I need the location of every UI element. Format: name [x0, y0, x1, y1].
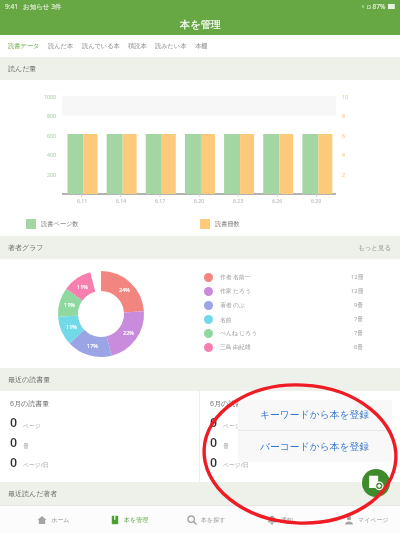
staticText: ページ [223, 422, 241, 429]
staticText: 積読本 [128, 42, 147, 50]
staticText: 本を管理 [180, 18, 221, 31]
staticText: 800 [47, 112, 56, 119]
button[interactable]: 読んでいる本 [78, 35, 124, 57]
staticText: 6月の読書量 [210, 399, 250, 409]
staticText: ページ/日 [223, 461, 249, 469]
button[interactable]: 作者 名前一 [204, 270, 364, 284]
staticText: 6.17 [155, 197, 166, 204]
button[interactable]: 作家 たろう [204, 284, 364, 298]
button[interactable]: 本を探す [183, 506, 230, 533]
staticText: 最近読んだ著者 [8, 489, 58, 498]
staticText: 9:41 [5, 2, 18, 11]
staticText: 17% [87, 342, 98, 349]
staticText: 6.20 [194, 197, 205, 204]
staticText: 0 [10, 454, 18, 471]
button[interactable]: 本を管理 [106, 506, 153, 533]
staticText: 600 [47, 132, 56, 139]
staticText: 6.29 [311, 197, 322, 204]
staticText: 読みたい本 [155, 42, 187, 50]
staticText: 200 [47, 171, 56, 178]
staticText: 読んでいる本 [82, 42, 120, 50]
button[interactable]: キーワードから本を登録 [238, 400, 392, 430]
staticText: 9冊 [354, 301, 364, 309]
staticText: ◦ ▫ 87% [361, 2, 386, 11]
staticText: 0 [10, 414, 18, 431]
staticText: 本を管理 [124, 516, 149, 524]
staticText: 6 [342, 132, 345, 139]
button[interactable]: 読書データ [4, 35, 44, 57]
staticText: 0 [210, 434, 218, 451]
staticText: 読んだ量 [8, 64, 37, 73]
staticText: 12冊 [351, 287, 364, 295]
staticText: もっと見る [358, 244, 392, 252]
button[interactable]: 読んだ本 [44, 35, 78, 57]
staticText: ぺんね じろう [220, 329, 258, 337]
staticText: 著者 のぶ [220, 301, 245, 309]
staticText: 最近の読書量 [8, 375, 51, 384]
button[interactable]: バーコードから本を登録 [238, 431, 392, 462]
staticText: 冊 [223, 442, 229, 449]
staticText: 読書データ [8, 42, 40, 50]
staticText: 通知 [281, 516, 293, 524]
button[interactable]: 通知 [263, 506, 297, 533]
staticText: 読書冊数 [215, 220, 240, 228]
staticText: 22% [123, 329, 134, 336]
staticText: 0 [210, 454, 218, 471]
staticText: マイページ [358, 516, 389, 524]
staticText: 11% [77, 283, 88, 290]
staticText: 7冊 [354, 315, 364, 323]
staticText: お知らせ 3件 [23, 2, 62, 11]
staticText: 11% [66, 323, 77, 330]
staticText: 12冊 [351, 273, 364, 281]
staticText: 6.23 [233, 197, 244, 204]
button[interactable]: ぺんね じろう [204, 326, 364, 340]
button[interactable]: マイページ [340, 506, 393, 533]
button[interactable]: ホーム [33, 506, 74, 533]
button[interactable]: 本棚 [191, 35, 212, 57]
button[interactable]: 三島 由紀雄 [204, 340, 364, 354]
staticText: 2 [342, 171, 345, 178]
staticText: 6冊 [354, 343, 364, 351]
staticText: 400 [47, 151, 56, 158]
staticText: 著者グラフ [8, 243, 44, 252]
staticText: ページ [23, 422, 41, 429]
button[interactable]: もっと見る [350, 236, 400, 259]
staticText: 0 [210, 414, 218, 431]
staticText: ページ/日 [23, 461, 49, 469]
staticText: 7冊 [354, 329, 364, 337]
button[interactable]: 著者 のぶ [204, 298, 364, 312]
staticText: 11% [64, 301, 75, 308]
button[interactable]: 本を登録 [362, 469, 390, 497]
button[interactable]: 名前 [204, 312, 364, 326]
staticText: 読んだ本 [48, 42, 74, 50]
staticText: 名前 [220, 316, 232, 323]
staticText: 8 [342, 112, 345, 119]
staticText: 24% [119, 286, 130, 293]
staticText: 4 [342, 151, 345, 158]
staticText: 6.26 [272, 197, 283, 204]
staticText: 6月の読書量 [10, 399, 50, 409]
staticText: 作家 たろう [220, 287, 251, 295]
button[interactable]: 読みたい本 [151, 35, 191, 57]
staticText: 10 [342, 93, 348, 100]
staticText: 冊 [23, 442, 29, 449]
staticText: 1000 [44, 93, 56, 100]
staticText: 0 [10, 434, 18, 451]
staticText: 6.11 [77, 197, 88, 204]
staticText: 本棚 [195, 42, 208, 50]
staticText: バーコードから本を登録 [260, 441, 370, 453]
staticText: キーワードから本を登録 [260, 409, 370, 421]
staticText: 本を探す [201, 516, 226, 524]
staticText: 読書ページ数 [41, 220, 79, 228]
staticText: 三島 由紀雄 [220, 343, 251, 351]
staticText: 6.14 [116, 197, 127, 204]
staticText: 作者 名前一 [220, 273, 251, 281]
staticText: ホーム [51, 516, 70, 524]
button[interactable]: 積読本 [124, 35, 151, 57]
